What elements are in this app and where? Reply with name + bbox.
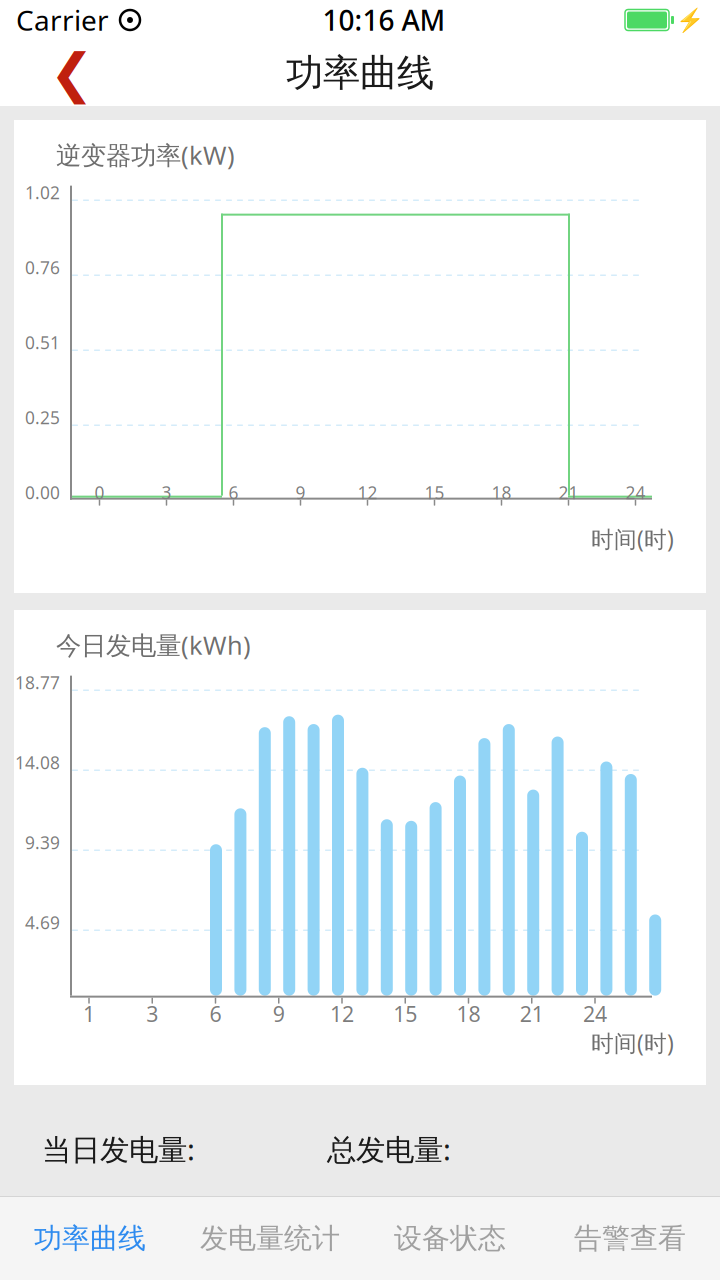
staticText: 0 [94, 481, 104, 504]
staticText: 功率曲线 [286, 50, 434, 96]
staticText: 18.77 [15, 671, 60, 694]
staticText: 21 [558, 481, 578, 504]
staticText: 18 [456, 999, 480, 1028]
staticText: 1.02 [25, 181, 60, 204]
staticText: ❮ [49, 43, 94, 103]
button[interactable]: 告警查看 [540, 1197, 720, 1280]
staticText: 总发电量: [327, 1129, 451, 1168]
staticText: 时间(时) [591, 524, 674, 554]
staticText: 4.69 [25, 911, 60, 934]
button[interactable]: 功率曲线 [0, 1197, 180, 1280]
staticText: 时间(时) [591, 1028, 674, 1058]
staticText: 3 [146, 999, 158, 1028]
staticText: Carrier [16, 1, 109, 39]
staticText: 设备状态 [394, 1221, 506, 1256]
staticText: 21 [520, 999, 544, 1028]
button[interactable]: 发电量统计 [180, 1197, 360, 1280]
staticText: 12 [357, 481, 377, 504]
staticText: 逆变器功率(kW) [56, 138, 235, 172]
staticText: 6 [209, 999, 221, 1028]
staticText: 0.76 [25, 256, 60, 279]
staticText: 10:16 AM [322, 1, 445, 39]
staticText: 15 [393, 999, 417, 1028]
staticText: 15 [424, 481, 444, 504]
button[interactable]: 设备状态 [360, 1197, 540, 1280]
staticText: 9 [273, 999, 285, 1028]
staticText: 3 [161, 481, 171, 504]
staticText: 12 [330, 999, 354, 1028]
staticText: 9 [295, 481, 305, 504]
staticText: ⚡ [676, 7, 704, 33]
staticText: 0.51 [25, 331, 60, 354]
staticText: 发电量统计 [200, 1221, 340, 1256]
staticText: 14.08 [15, 751, 60, 774]
staticText: 9.39 [25, 831, 60, 854]
staticText: 6 [228, 481, 238, 504]
staticText: 0.25 [25, 406, 60, 429]
staticText: 1 [83, 999, 95, 1028]
staticText: 功率曲线 [34, 1221, 146, 1256]
staticText: 当日发电量: [42, 1129, 195, 1168]
staticText: 今日发电量(kWh) [56, 628, 251, 662]
staticText: 24 [625, 481, 645, 504]
staticText: 0.00 [25, 481, 60, 504]
staticText: 24 [583, 999, 607, 1028]
button[interactable]: 返回 [40, 41, 104, 105]
staticText: 告警查看 [574, 1221, 686, 1256]
staticText: 18 [491, 481, 511, 504]
